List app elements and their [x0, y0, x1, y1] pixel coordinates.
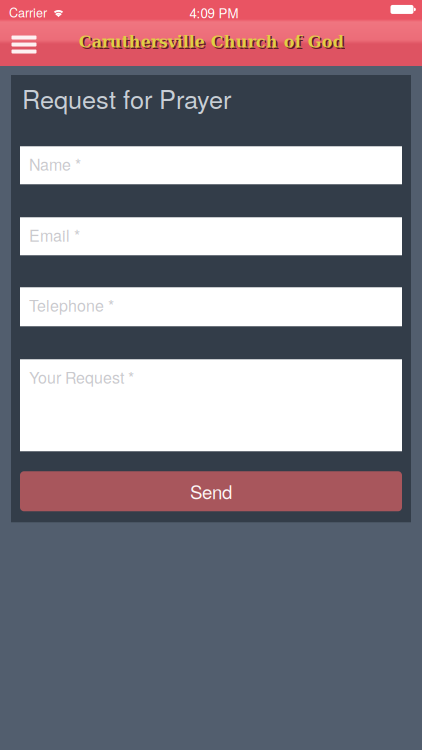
- button[interactable]: Send: [20, 471, 402, 511]
- button[interactable]: Telephone *: [20, 287, 402, 326]
- staticText: Email *: [29, 223, 80, 246]
- staticText: Request for Prayer: [22, 80, 231, 116]
- staticText: Caruthersville Church of God: [79, 32, 344, 51]
- staticText: Caruthersville Church of God: [80, 34, 345, 53]
- staticText: Your Request *: [29, 365, 134, 388]
- staticText: Carrier: [9, 3, 47, 21]
- staticText: Name *: [29, 152, 81, 175]
- staticText: Send: [190, 478, 232, 505]
- staticText: Telephone *: [29, 293, 114, 316]
- button[interactable]: Menu: [2, 21, 46, 66]
- staticText: 4:09 PM: [189, 3, 238, 22]
- button[interactable]: Your Request *: [20, 359, 402, 451]
- button[interactable]: Email *: [20, 217, 402, 255]
- button[interactable]: Name *: [20, 146, 402, 184]
